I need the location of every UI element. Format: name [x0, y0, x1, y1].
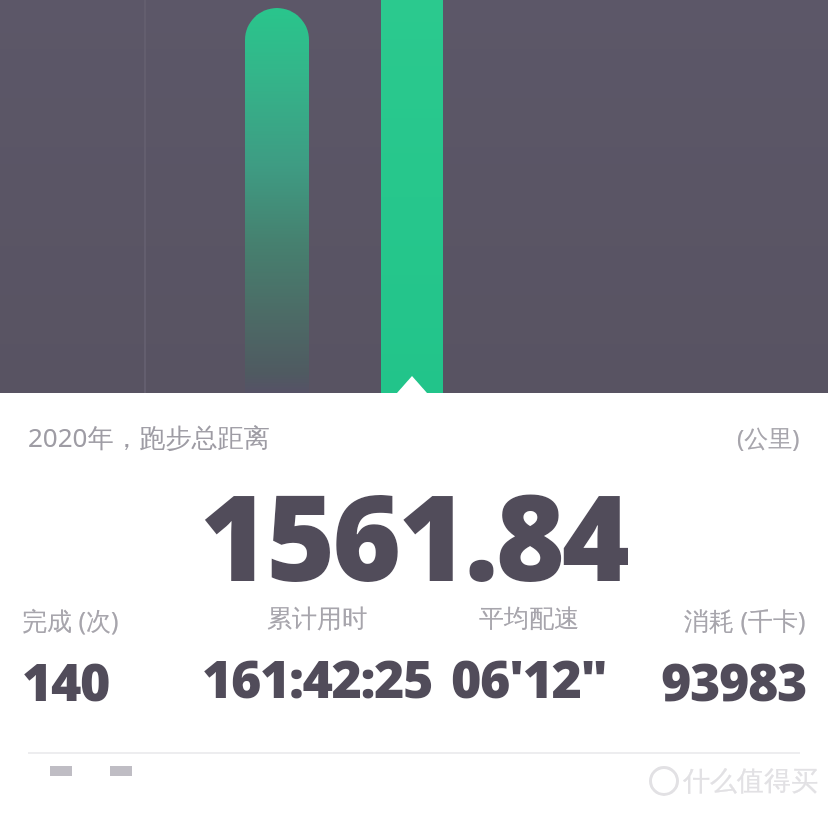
- button[interactable]: 完成 (次): [22, 603, 198, 716]
- staticText: 消耗 (千卡): [684, 603, 806, 637]
- staticText: 140: [22, 645, 109, 716]
- staticText: 06'12": [451, 642, 607, 713]
- staticText: 1561.84: [200, 455, 628, 587]
- button[interactable]: 平均配速: [436, 603, 621, 713]
- button[interactable]: 2020年，跑步总距离: [28, 419, 800, 455]
- staticText: 平均配速: [479, 603, 579, 634]
- staticText: 累计用时: [267, 603, 367, 634]
- staticText: 93983: [661, 645, 806, 716]
- staticText: 完成 (次): [22, 603, 119, 637]
- button[interactable]: 消耗 (千卡): [621, 603, 806, 716]
- staticText: 161:42:25: [202, 642, 432, 713]
- staticText: (公里): [737, 421, 800, 454]
- staticText: 2020年，跑步总距离: [28, 419, 270, 455]
- button[interactable]: 累计用时: [198, 603, 436, 713]
- staticText: 什么值得买: [683, 764, 818, 798]
- button[interactable]: 1561.84: [0, 455, 828, 587]
- button[interactable]: [0, 0, 828, 393]
